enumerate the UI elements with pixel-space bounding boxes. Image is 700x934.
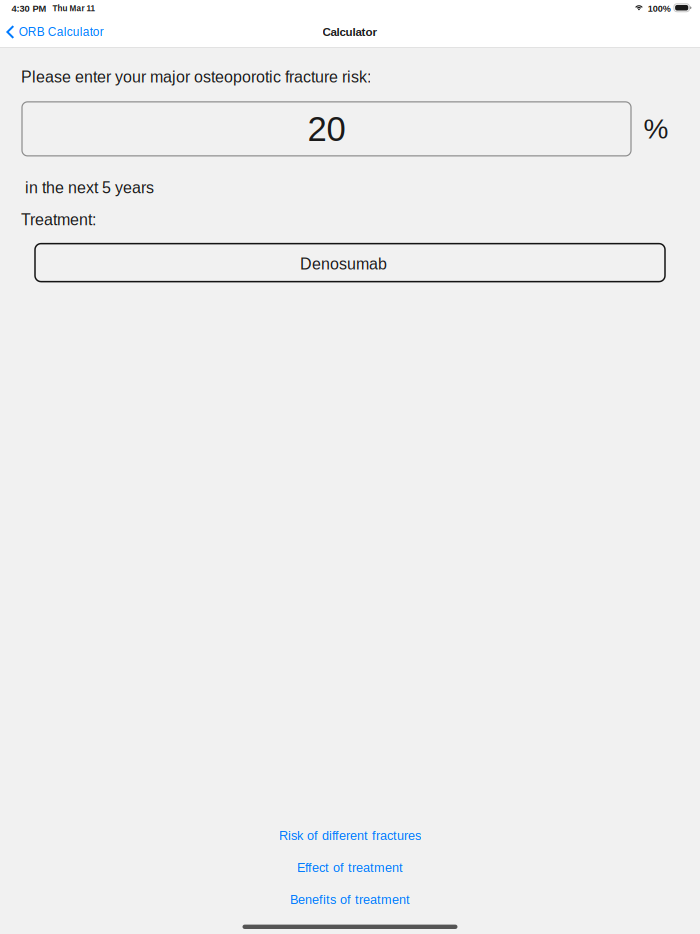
button[interactable]: Benefits of treatment xyxy=(0,884,700,916)
staticText: 100% xyxy=(648,3,671,13)
staticText: Risk of different fractures xyxy=(279,828,421,843)
staticText: 20 xyxy=(307,109,345,148)
button[interactable]: Effect of treatment xyxy=(0,852,700,884)
staticText: Calculator xyxy=(322,25,377,38)
staticText: Treatment: xyxy=(21,211,96,229)
staticText: ORB Calculator xyxy=(19,25,104,39)
button[interactable]: 20 xyxy=(22,102,631,156)
staticText: Effect of treatment xyxy=(297,860,403,875)
staticText: in the next 5 years xyxy=(21,179,154,197)
button[interactable]: Risk of different fractures xyxy=(0,820,700,852)
staticText: Thu Mar 11 xyxy=(52,4,95,13)
staticText: 4:30 PM xyxy=(11,3,46,14)
button[interactable]: Denosumab xyxy=(35,244,665,282)
staticText: Benefits of treatment xyxy=(290,892,410,907)
button[interactable]: ORB Calculator xyxy=(0,18,114,45)
staticText: Please enter your major osteoporotic fra… xyxy=(21,68,371,86)
staticText: Denosumab xyxy=(300,255,387,273)
staticText: % xyxy=(643,113,668,144)
